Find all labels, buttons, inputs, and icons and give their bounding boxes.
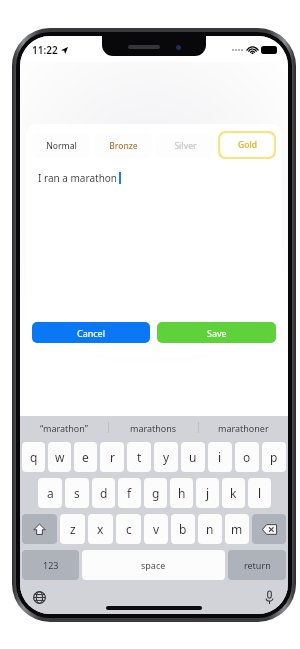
staticText: q [30, 449, 38, 465]
button[interactable]: r [100, 442, 124, 472]
staticText: f [127, 485, 132, 501]
button[interactable]: return [228, 550, 286, 580]
button[interactable]: Dictation [259, 587, 279, 607]
button[interactable]: q [22, 442, 45, 472]
button[interactable]: Save [157, 322, 276, 343]
staticText: 123 [43, 559, 59, 571]
button[interactable]: t [127, 442, 151, 472]
staticText: Silver [174, 140, 197, 152]
staticText: Normal [46, 140, 77, 152]
button[interactable]: u [181, 442, 205, 472]
button[interactable]: Silver [156, 133, 214, 158]
button[interactable]: f [118, 478, 141, 508]
staticText: c [126, 521, 132, 537]
button[interactable]: a [38, 478, 62, 508]
button[interactable]: Bronze [94, 133, 152, 158]
staticText: k [230, 485, 237, 501]
button[interactable]: marathons [109, 416, 198, 439]
staticText: e [82, 449, 89, 465]
button[interactable]: b [171, 514, 195, 544]
button[interactable]: w [48, 442, 71, 472]
staticText: w [55, 449, 65, 465]
button[interactable]: Switch keyboard language [29, 587, 49, 607]
button[interactable]: Gold [221, 134, 273, 156]
button[interactable]: o [235, 442, 259, 472]
staticText: Cancel [77, 327, 106, 339]
staticText: g [152, 485, 160, 501]
button[interactable]: 123 [22, 550, 79, 580]
staticText: r [110, 449, 115, 465]
button[interactable]: Normal [32, 133, 90, 158]
button[interactable]: Backspace [252, 514, 286, 544]
staticText: Bronze [109, 140, 138, 152]
staticText: n [206, 521, 214, 537]
button[interactable]: c [116, 514, 141, 544]
button[interactable]: s [65, 478, 89, 508]
staticText: s [74, 485, 80, 501]
button[interactable]: k [222, 478, 245, 508]
staticText: o [243, 449, 251, 465]
staticText: b [179, 521, 187, 537]
button[interactable]: d [92, 478, 115, 508]
staticText: d [100, 485, 108, 501]
staticText: a [47, 485, 54, 501]
staticText: Gold [238, 139, 257, 151]
button[interactable]: y [154, 442, 178, 472]
button[interactable]: i [208, 442, 232, 472]
staticText: i [218, 449, 222, 465]
staticText: z [70, 521, 76, 537]
staticText: v [153, 521, 160, 537]
staticText: “marathon” [40, 422, 88, 434]
staticText: x [97, 521, 104, 537]
staticText: p [270, 449, 278, 465]
button[interactable]: Cancel [32, 322, 150, 343]
button[interactable]: Shift [22, 514, 57, 544]
staticText: 11:22 [32, 43, 58, 57]
button[interactable]: space [82, 550, 225, 580]
button[interactable]: “marathon” [20, 416, 108, 439]
staticText: t [137, 449, 142, 465]
staticText: marathoner [218, 422, 269, 434]
button[interactable]: g [144, 478, 167, 508]
staticText: space [141, 559, 166, 571]
button[interactable]: m [225, 514, 249, 544]
button[interactable]: j [196, 478, 219, 508]
button[interactable]: e [74, 442, 97, 472]
staticText: h [178, 485, 186, 501]
button[interactable]: marathoner [199, 416, 288, 439]
button[interactable]: p [262, 442, 286, 472]
button[interactable]: z [60, 514, 85, 544]
staticText: marathons [130, 422, 177, 434]
button[interactable]: h [170, 478, 193, 508]
staticText: u [189, 449, 197, 465]
staticText: Save [207, 327, 227, 339]
button[interactable]: x [88, 514, 113, 544]
staticText: return [244, 559, 271, 571]
staticText: m [231, 521, 243, 537]
staticText: y [163, 449, 170, 465]
staticText: l [258, 485, 262, 501]
staticText: j [206, 485, 210, 501]
button[interactable]: v [144, 514, 168, 544]
button[interactable]: l [248, 478, 271, 508]
button[interactable]: I ran a marathon [32, 166, 276, 316]
button[interactable]: n [198, 514, 222, 544]
staticText: I ran a marathon [38, 171, 118, 185]
